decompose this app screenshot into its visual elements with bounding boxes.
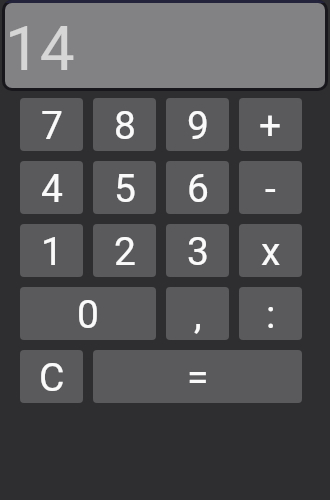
staticText: 4 [41,166,63,212]
staticText: 14 [5,12,75,85]
button[interactable]: 8 [93,98,156,151]
staticText: 3 [187,229,209,275]
button[interactable]: 2 [93,224,156,277]
staticText: C [39,355,65,401]
staticText: x [261,229,281,275]
staticText: : [266,292,276,338]
button[interactable]: 9 [166,98,229,151]
staticText: 1 [41,229,63,275]
button[interactable]: 0 [20,287,156,340]
button[interactable]: = [93,350,302,403]
staticText: 0 [77,292,99,338]
staticText: 7 [41,103,63,149]
button[interactable]: , [166,287,229,340]
button[interactable]: 6 [166,161,229,214]
staticText: 9 [187,103,209,149]
button[interactable]: 1 [20,224,83,277]
staticText: , [194,292,202,338]
staticText: 8 [114,103,136,149]
button[interactable]: 5 [93,161,156,214]
button[interactable]: - [239,161,302,214]
button[interactable]: x [239,224,302,277]
staticText: 5 [114,166,136,212]
staticText: + [259,103,282,149]
button[interactable]: 7 [20,98,83,151]
button[interactable]: C [20,350,83,403]
staticText: 2 [114,229,136,275]
button[interactable]: 4 [20,161,83,214]
staticText: 6 [187,166,209,212]
staticText: - [265,166,276,212]
button[interactable]: 3 [166,224,229,277]
button[interactable]: + [239,98,302,151]
button[interactable]: : [239,287,302,340]
staticText: = [187,355,209,401]
